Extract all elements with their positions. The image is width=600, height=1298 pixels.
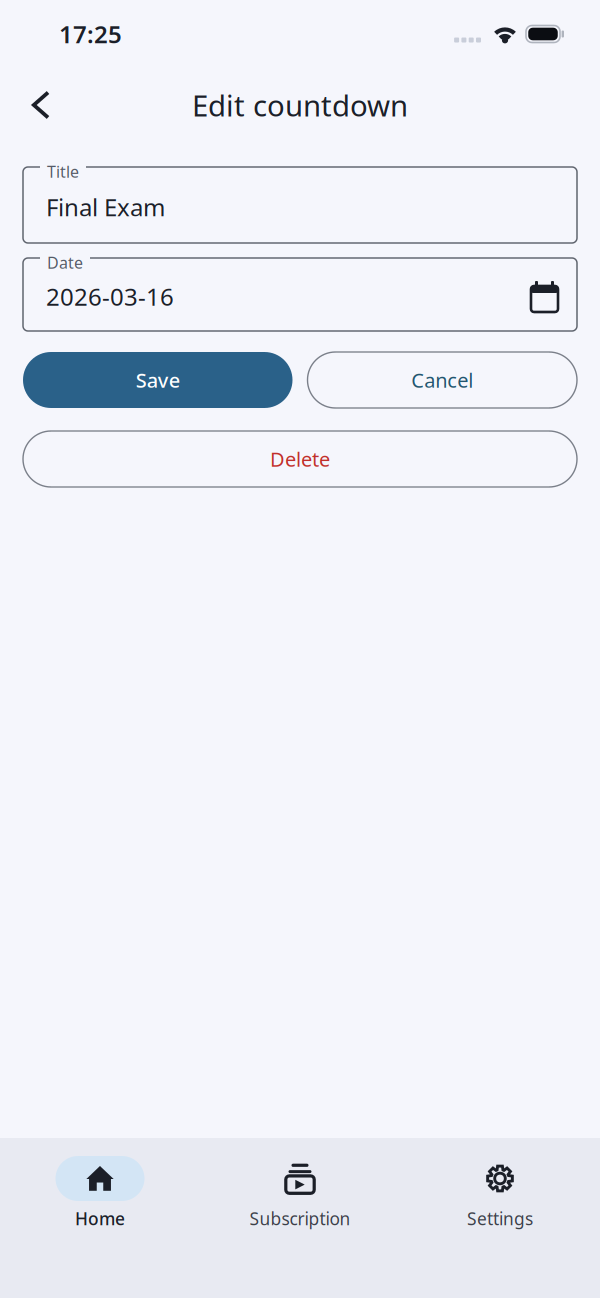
staticText: Home	[75, 1207, 125, 1230]
button[interactable]: Settings	[400, 1156, 600, 1230]
button[interactable]: Delete	[23, 431, 577, 487]
staticText: Settings	[467, 1207, 533, 1230]
staticText: Subscription	[249, 1207, 350, 1230]
staticText: Final Exam	[46, 191, 165, 223]
staticText: Date	[47, 252, 83, 273]
staticText: Cancel	[411, 367, 473, 393]
staticText: 2026-03-16	[46, 281, 174, 312]
staticText: Delete	[270, 446, 330, 472]
button[interactable]: Subscription	[200, 1156, 400, 1230]
staticText: Title	[47, 161, 79, 182]
button[interactable]: Back	[14, 78, 68, 132]
button[interactable]: Cancel	[307, 352, 577, 408]
staticText: 17:25	[59, 18, 122, 50]
staticText: Save	[136, 367, 180, 393]
button[interactable]: Save	[23, 352, 292, 408]
staticText: Edit countdown	[192, 85, 408, 124]
button[interactable]: Home	[0, 1156, 200, 1230]
